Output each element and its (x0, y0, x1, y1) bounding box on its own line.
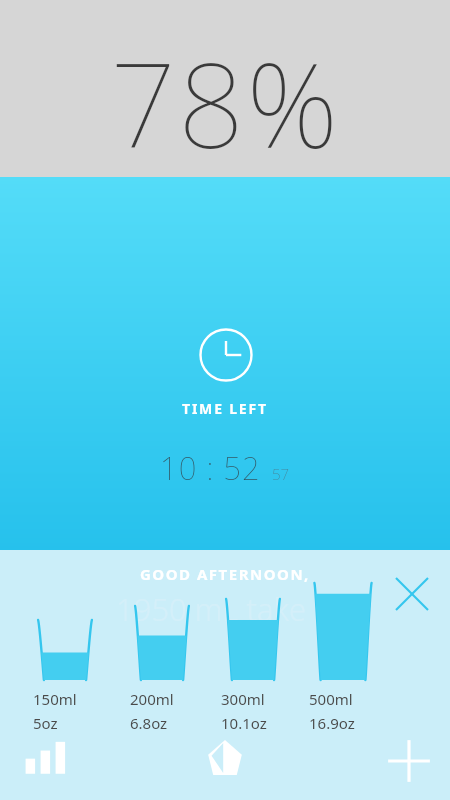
button[interactable]: 200ml (130, 604, 194, 733)
staticText: 6.8oz (130, 713, 168, 733)
staticText: 300ml (221, 689, 265, 709)
staticText: GOOD AFTERNOON, (140, 564, 310, 584)
staticText: 500ml (309, 689, 353, 709)
staticText: 5oz (33, 713, 58, 733)
staticText: 200ml (130, 689, 174, 709)
button[interactable]: Statistics (14, 732, 72, 790)
button[interactable]: Add (380, 732, 438, 790)
staticText: 16.9oz (309, 713, 355, 733)
button[interactable]: 300ml (221, 597, 285, 733)
staticText: 150ml (33, 689, 77, 709)
other: Timer (199, 328, 253, 382)
staticText: 78% (110, 24, 341, 182)
staticText: 1950 mL take (116, 588, 307, 630)
button[interactable]: Close (390, 572, 434, 616)
button[interactable]: 150ml (33, 618, 97, 733)
staticText: 10.1oz (221, 713, 267, 733)
staticText: 57 (272, 464, 290, 484)
staticText: 10 : 52 (160, 447, 261, 489)
staticText: TIME LEFT (182, 399, 268, 418)
button[interactable]: 500ml (309, 581, 377, 733)
button[interactable]: Add water (196, 732, 254, 790)
